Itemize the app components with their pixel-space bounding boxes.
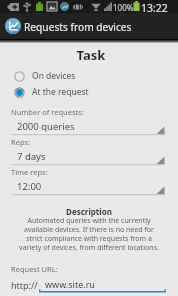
staticText: 12:00 [17,180,42,193]
staticText: Automated queries with the currently ava… [10,216,168,252]
staticText: Time reps: [11,167,48,177]
button[interactable]: On devices [0,69,178,83]
button[interactable]: Number of requests: [0,106,178,136]
staticText: On devices [32,70,76,82]
staticText: www.site.ru [45,278,95,290]
button[interactable]: Reps: [0,136,178,166]
staticText: 2000 queries [17,120,75,133]
staticText: At the request [32,86,89,98]
button[interactable]: Time reps: [0,166,178,196]
staticText: http:// [11,279,38,291]
staticText: Task [2,46,178,64]
staticText: Reps: [11,137,31,147]
staticText: 7 days [17,150,46,163]
staticText: Request URL: [11,264,58,274]
staticText: Number of requests: [11,107,84,117]
staticText: Requests from devices [24,20,132,34]
staticText: 13:22 [141,1,168,14]
button[interactable]: At the request [0,85,178,99]
staticText: Description [0,206,178,217]
staticText: 100% [113,2,134,13]
